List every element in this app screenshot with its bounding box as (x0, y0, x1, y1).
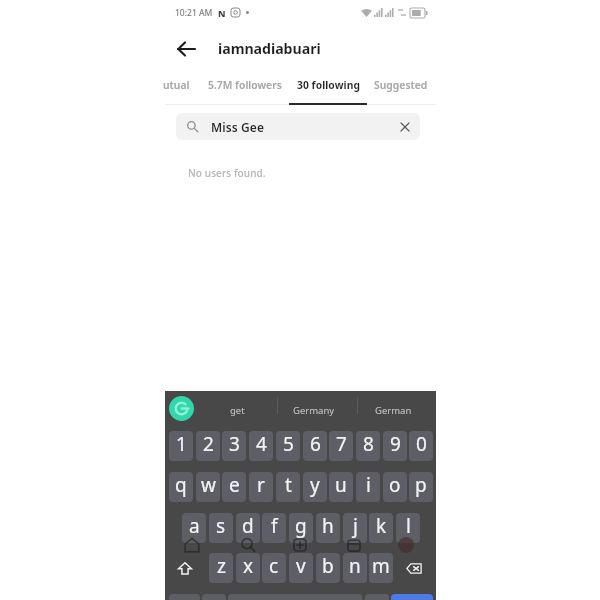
button[interactable]: p (409, 472, 433, 502)
button[interactable]: Period (365, 594, 389, 600)
button[interactable]: v (289, 553, 313, 583)
button[interactable]: c (262, 553, 286, 583)
button[interactable]: 9 (383, 431, 407, 461)
staticText: l (406, 513, 411, 539)
button[interactable]: n (343, 553, 367, 583)
staticText: 8 (363, 431, 374, 457)
staticText: 2 (203, 431, 214, 457)
button[interactable]: Search (391, 594, 433, 600)
staticText: 3 (229, 431, 240, 457)
button[interactable]: Home (184, 537, 200, 553)
staticText: n (349, 553, 361, 579)
staticText: German (375, 404, 412, 417)
staticText: 1 (176, 431, 187, 457)
button[interactable]: Emoji (202, 594, 226, 600)
staticText: N (218, 7, 226, 19)
button[interactable]: 5.7M followers (208, 74, 282, 96)
button[interactable]: y (303, 472, 327, 502)
button[interactable]: m (369, 553, 393, 583)
button[interactable]: o (383, 472, 407, 502)
button[interactable]: h (316, 513, 340, 543)
staticText: 10:21 AM (175, 7, 213, 19)
button[interactable]: 4 (249, 431, 273, 461)
button[interactable]: b (316, 553, 340, 583)
staticText: iamnadiabuari (218, 39, 321, 58)
button[interactable]: e (222, 472, 246, 502)
button[interactable]: t (276, 472, 300, 502)
staticText: utual (163, 78, 190, 92)
staticText: v (296, 553, 306, 579)
button[interactable]: l (396, 513, 420, 543)
staticText: i (366, 472, 371, 498)
button[interactable]: Shift (169, 553, 200, 583)
staticText: get (230, 404, 245, 417)
staticText: Germany (293, 404, 335, 417)
staticText: y (310, 472, 320, 498)
button[interactable]: 7 (329, 431, 353, 461)
staticText: r (257, 472, 265, 498)
staticText: e (229, 472, 240, 498)
button[interactable]: 2 (196, 431, 220, 461)
button[interactable]: utual (163, 74, 190, 96)
button[interactable]: Search (240, 537, 256, 553)
button[interactable]: Clear search (394, 116, 416, 138)
staticText: 30 following (297, 78, 360, 92)
button[interactable]: Back (173, 35, 200, 62)
button[interactable]: Gboard settings (169, 396, 194, 421)
button[interactable]: f (262, 513, 286, 543)
staticText: No users found. (188, 166, 266, 180)
staticText: 5 (283, 431, 294, 457)
button[interactable]: Suggested (374, 74, 428, 96)
staticText: d (242, 513, 254, 539)
staticText: 9 (390, 431, 401, 457)
staticText: b (322, 553, 334, 579)
staticText: o (389, 472, 401, 498)
button[interactable]: 8 (356, 431, 380, 461)
staticText: t (285, 472, 292, 498)
button[interactable]: Profile (398, 537, 414, 553)
button[interactable]: 3 (222, 431, 246, 461)
button[interactable]: z (209, 553, 233, 583)
staticText: m (372, 553, 390, 579)
staticText: k (376, 513, 387, 539)
staticText: x (243, 553, 254, 579)
staticText: c (269, 553, 279, 579)
button[interactable]: a (182, 513, 206, 543)
button[interactable]: u (329, 472, 353, 502)
button[interactable]: s (209, 513, 233, 543)
button[interactable]: Symbols (169, 594, 200, 600)
staticText: Miss Gee (211, 119, 265, 135)
button[interactable]: i (356, 472, 380, 502)
button[interactable]: q (169, 472, 193, 502)
button[interactable]: Miss Gee (176, 113, 420, 140)
button[interactable]: 30 following (297, 74, 360, 96)
staticText: w (201, 472, 216, 498)
button[interactable]: g (289, 513, 313, 543)
staticText: 6 (310, 431, 321, 457)
staticText: 7 (336, 431, 347, 457)
button[interactable]: d (236, 513, 260, 543)
button[interactable]: 0 (409, 431, 433, 461)
button[interactable]: Backspace (398, 553, 429, 583)
button[interactable]: j (343, 513, 367, 543)
staticText: z (217, 553, 226, 579)
button[interactable]: 6 (303, 431, 327, 461)
staticText: g (295, 513, 307, 539)
staticText: 5.7M followers (208, 78, 282, 92)
button[interactable]: German (353, 397, 433, 423)
button[interactable]: get (197, 397, 277, 423)
staticText: s (216, 513, 226, 539)
staticText: a (189, 513, 200, 539)
button[interactable]: r (249, 472, 273, 502)
button[interactable]: w (196, 472, 220, 502)
button[interactable]: 1 (169, 431, 193, 461)
button[interactable]: New post (292, 537, 308, 553)
button[interactable]: 5 (276, 431, 300, 461)
button[interactable]: Shop (346, 537, 362, 553)
button[interactable]: x (236, 553, 260, 583)
staticText: Suggested (374, 78, 428, 92)
button[interactable]: k (369, 513, 393, 543)
staticText: 0 (416, 431, 427, 457)
button[interactable]: Germany (274, 397, 354, 423)
